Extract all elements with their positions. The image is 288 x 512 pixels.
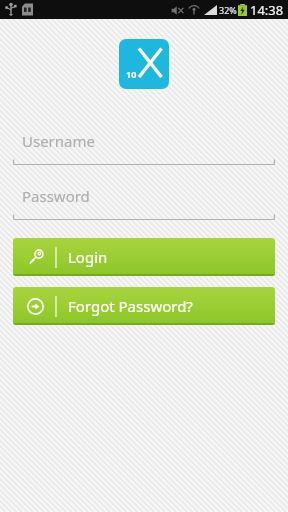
staticText: 10 [126,68,137,80]
button[interactable]: Login [13,238,275,276]
staticText: Password [22,186,90,206]
staticText: 14:38 [250,1,284,19]
staticText: Login [68,247,108,267]
button[interactable]: Password [13,179,275,221]
button[interactable]: Forgot Password [13,287,275,325]
staticText: Username [22,131,95,151]
staticText: Forgot Password? [68,296,193,316]
button[interactable]: Username [13,124,275,166]
button[interactable]: App logo X10 [119,39,169,89]
staticText: 32% [219,4,237,16]
